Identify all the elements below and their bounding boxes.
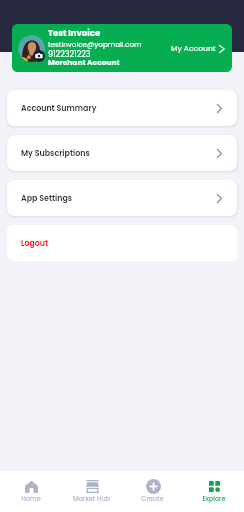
- staticText: testinvoice@yopmail.com: [48, 39, 142, 49]
- staticText: App Settings: [21, 193, 73, 204]
- button[interactable]: Create: [122, 471, 183, 512]
- staticText: Test Invoice: [48, 27, 101, 39]
- staticText: Explore: [202, 494, 226, 503]
- staticText: Home: [21, 494, 41, 503]
- staticText: Account Summary: [21, 103, 97, 114]
- staticText: My Subscriptions: [21, 148, 90, 159]
- button[interactable]: Market Hub: [61, 471, 122, 512]
- staticText: Create: [141, 494, 164, 503]
- staticText: Merchant Account: [48, 57, 120, 67]
- staticText: My Account: [171, 43, 216, 54]
- button[interactable]: My Account: [171, 43, 225, 54]
- staticText: 9122321223: [48, 49, 91, 60]
- button[interactable]: Explore: [183, 471, 244, 512]
- button[interactable]: My Subscriptions: [7, 135, 237, 171]
- button[interactable]: Account Summary: [7, 90, 237, 126]
- staticText: Logout: [21, 238, 48, 249]
- button[interactable]: Logout: [7, 225, 237, 261]
- button[interactable]: App Settings: [7, 180, 237, 216]
- button[interactable]: Test Invoice: [12, 24, 232, 72]
- staticText: Market Hub: [73, 494, 110, 503]
- button[interactable]: Home: [0, 471, 61, 512]
